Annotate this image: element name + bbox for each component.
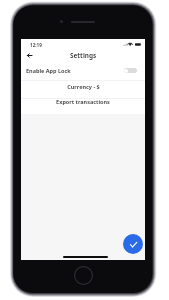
staticText: 12:19 [30,42,42,48]
button[interactable]: Currency - $ [21,80,145,93]
staticText: Currency - $ [67,83,100,90]
button[interactable]: Back [24,50,34,60]
button[interactable]: Export transactions [21,95,145,108]
button[interactable]: Enable App Lock [21,63,145,77]
staticText: Export transactions [56,98,110,105]
button[interactable]: Save [123,234,143,254]
staticText: Settings [70,51,97,60]
staticText: Enable App Lock [26,67,71,74]
